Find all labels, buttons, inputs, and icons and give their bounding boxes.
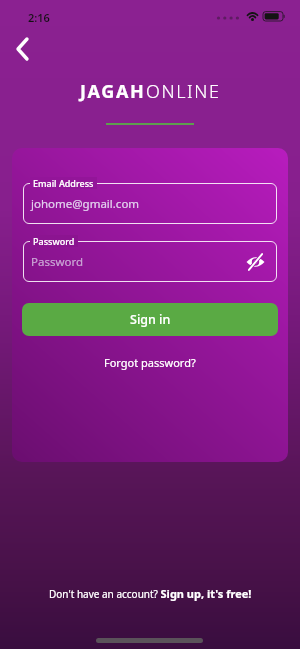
- button[interactable]: johome@gmail.com: [23, 183, 277, 224]
- staticText: Email Address: [33, 177, 94, 189]
- staticText: 2:16: [28, 10, 50, 25]
- staticText: ONLINE: [146, 79, 221, 104]
- button[interactable]: [8, 36, 36, 62]
- staticText: Sign in: [130, 311, 171, 328]
- button[interactable]: [245, 252, 266, 272]
- button[interactable]: Sign in: [22, 303, 278, 336]
- button[interactable]: Password: [23, 241, 277, 282]
- staticText: johome@gmail.com: [31, 196, 140, 212]
- staticText: JAGAH: [80, 79, 146, 104]
- staticText: Password: [31, 254, 84, 270]
- button[interactable]: Forgot password?: [104, 355, 196, 370]
- button[interactable]: Don't have an account? Sign up, it's fre…: [49, 586, 252, 601]
- staticText: Password: [33, 235, 75, 247]
